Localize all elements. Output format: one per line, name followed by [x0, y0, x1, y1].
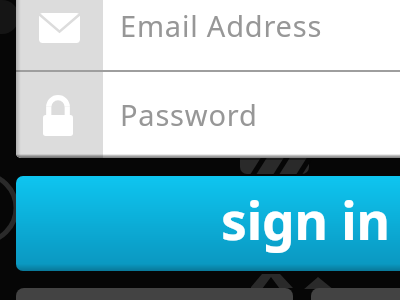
- other: Email: [39, 13, 80, 43]
- button[interactable]: [311, 288, 400, 300]
- staticText: sign in: [221, 185, 390, 255]
- button[interactable]: sign in: [16, 176, 400, 271]
- staticText: Email Address: [120, 6, 323, 45]
- other: Password: [43, 95, 73, 136]
- staticText: Password: [120, 95, 258, 134]
- button[interactable]: [16, 288, 293, 300]
